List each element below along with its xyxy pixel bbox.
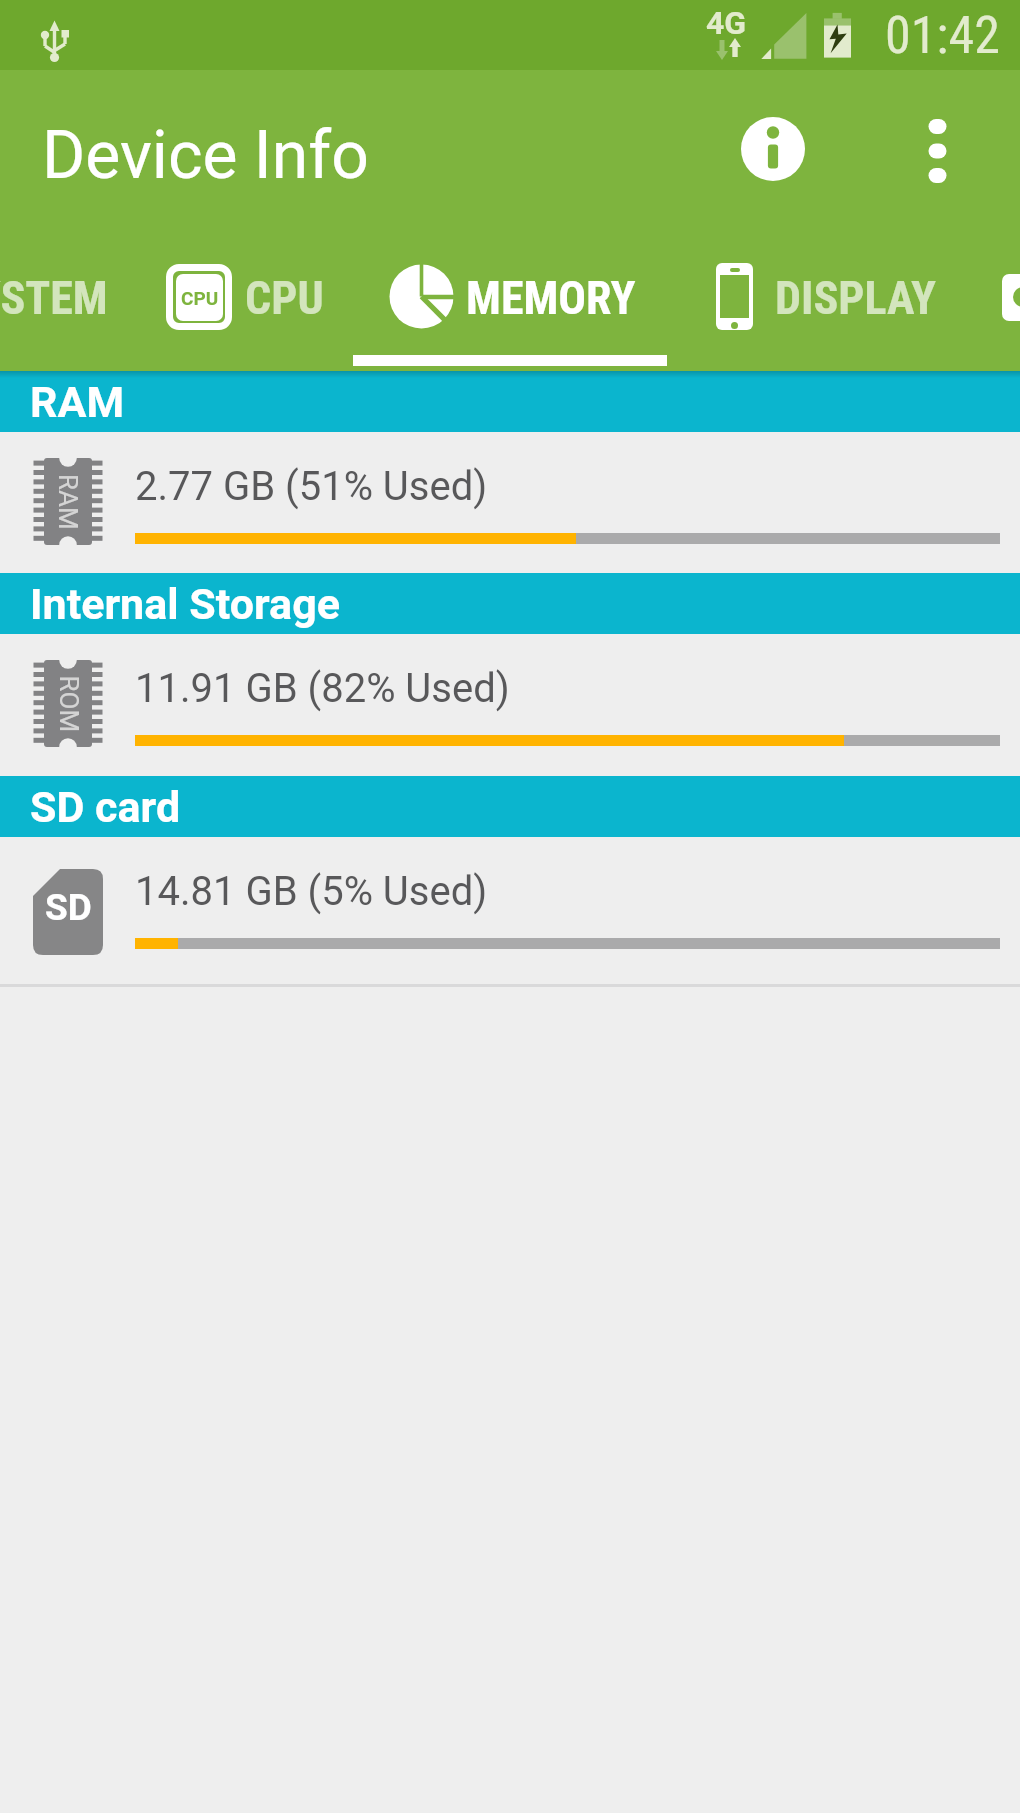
button[interactable] [0,226,131,370]
staticText: CPU [181,287,219,309]
staticText: Internal Storage [30,579,340,629]
staticText: MEMORY [466,271,636,325]
staticText: 11.91 GB (82% Used) [135,665,510,712]
button[interactable] [128,226,353,370]
staticText: 01:42 [885,5,1000,66]
button[interactable] [353,226,667,370]
staticText: SD [45,886,92,929]
staticText: SYSTEM [0,271,108,325]
button[interactable] [0,432,1020,571]
button[interactable] [741,117,805,181]
staticText: RAM [53,474,83,530]
button[interactable] [0,837,1020,976]
staticText: 2.77 GB (51% Used) [135,463,488,510]
staticText: CPU [245,271,324,325]
staticText: ROM [53,675,83,732]
staticText: 14.81 GB (5% Used) [135,868,488,915]
button[interactable] [910,110,966,190]
button[interactable] [0,634,1020,773]
staticText: DISPLAY [775,271,936,325]
staticText: RAM [30,377,125,427]
button[interactable] [667,226,975,370]
staticText: 4G [706,4,747,42]
staticText: Device Info [42,117,369,194]
staticText: SD card [30,782,181,832]
